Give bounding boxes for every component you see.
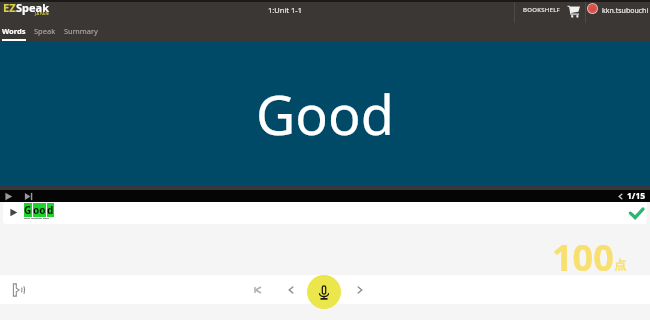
staticText: BOOKSHELF (523, 6, 561, 14)
button[interactable]: Next (354, 284, 366, 296)
staticText: Summary (64, 26, 98, 36)
staticText: 点 (614, 257, 626, 272)
staticText: kkn.tsubouchi (602, 6, 649, 16)
staticText: 1/15 (627, 190, 646, 202)
staticText: 100 (552, 233, 614, 275)
staticText: oo (33, 203, 46, 217)
button[interactable]: Cart (562, 3, 585, 19)
button[interactable]: Play (4, 192, 13, 201)
button[interactable]: G (3, 202, 647, 224)
staticText: d (47, 203, 54, 217)
staticText: EZ (3, 0, 16, 15)
staticText: Speak (34, 26, 56, 36)
button[interactable]: Volume (8, 281, 26, 299)
staticText: JAPAN (35, 11, 49, 16)
button[interactable]: First (252, 284, 264, 296)
button[interactable]: Previous (285, 284, 297, 296)
button[interactable]: Summary (60, 25, 102, 42)
button[interactable]: Speak (30, 25, 60, 42)
button[interactable]: Next (24, 192, 33, 201)
button[interactable]: BOOKSHELF (515, 0, 569, 20)
staticText: G (24, 203, 32, 217)
button[interactable]: Words (0, 25, 30, 42)
button[interactable]: Record (307, 275, 341, 309)
staticText: Good (256, 77, 394, 151)
button[interactable]: Previous page (616, 192, 625, 201)
staticText: Words (2, 26, 26, 36)
staticText: Speak (16, 0, 49, 15)
staticText: 1:Unit 1-1 (268, 5, 303, 15)
button[interactable]: EZ (3, 0, 51, 19)
button[interactable]: kkn.tsubouchi (586, 0, 650, 21)
